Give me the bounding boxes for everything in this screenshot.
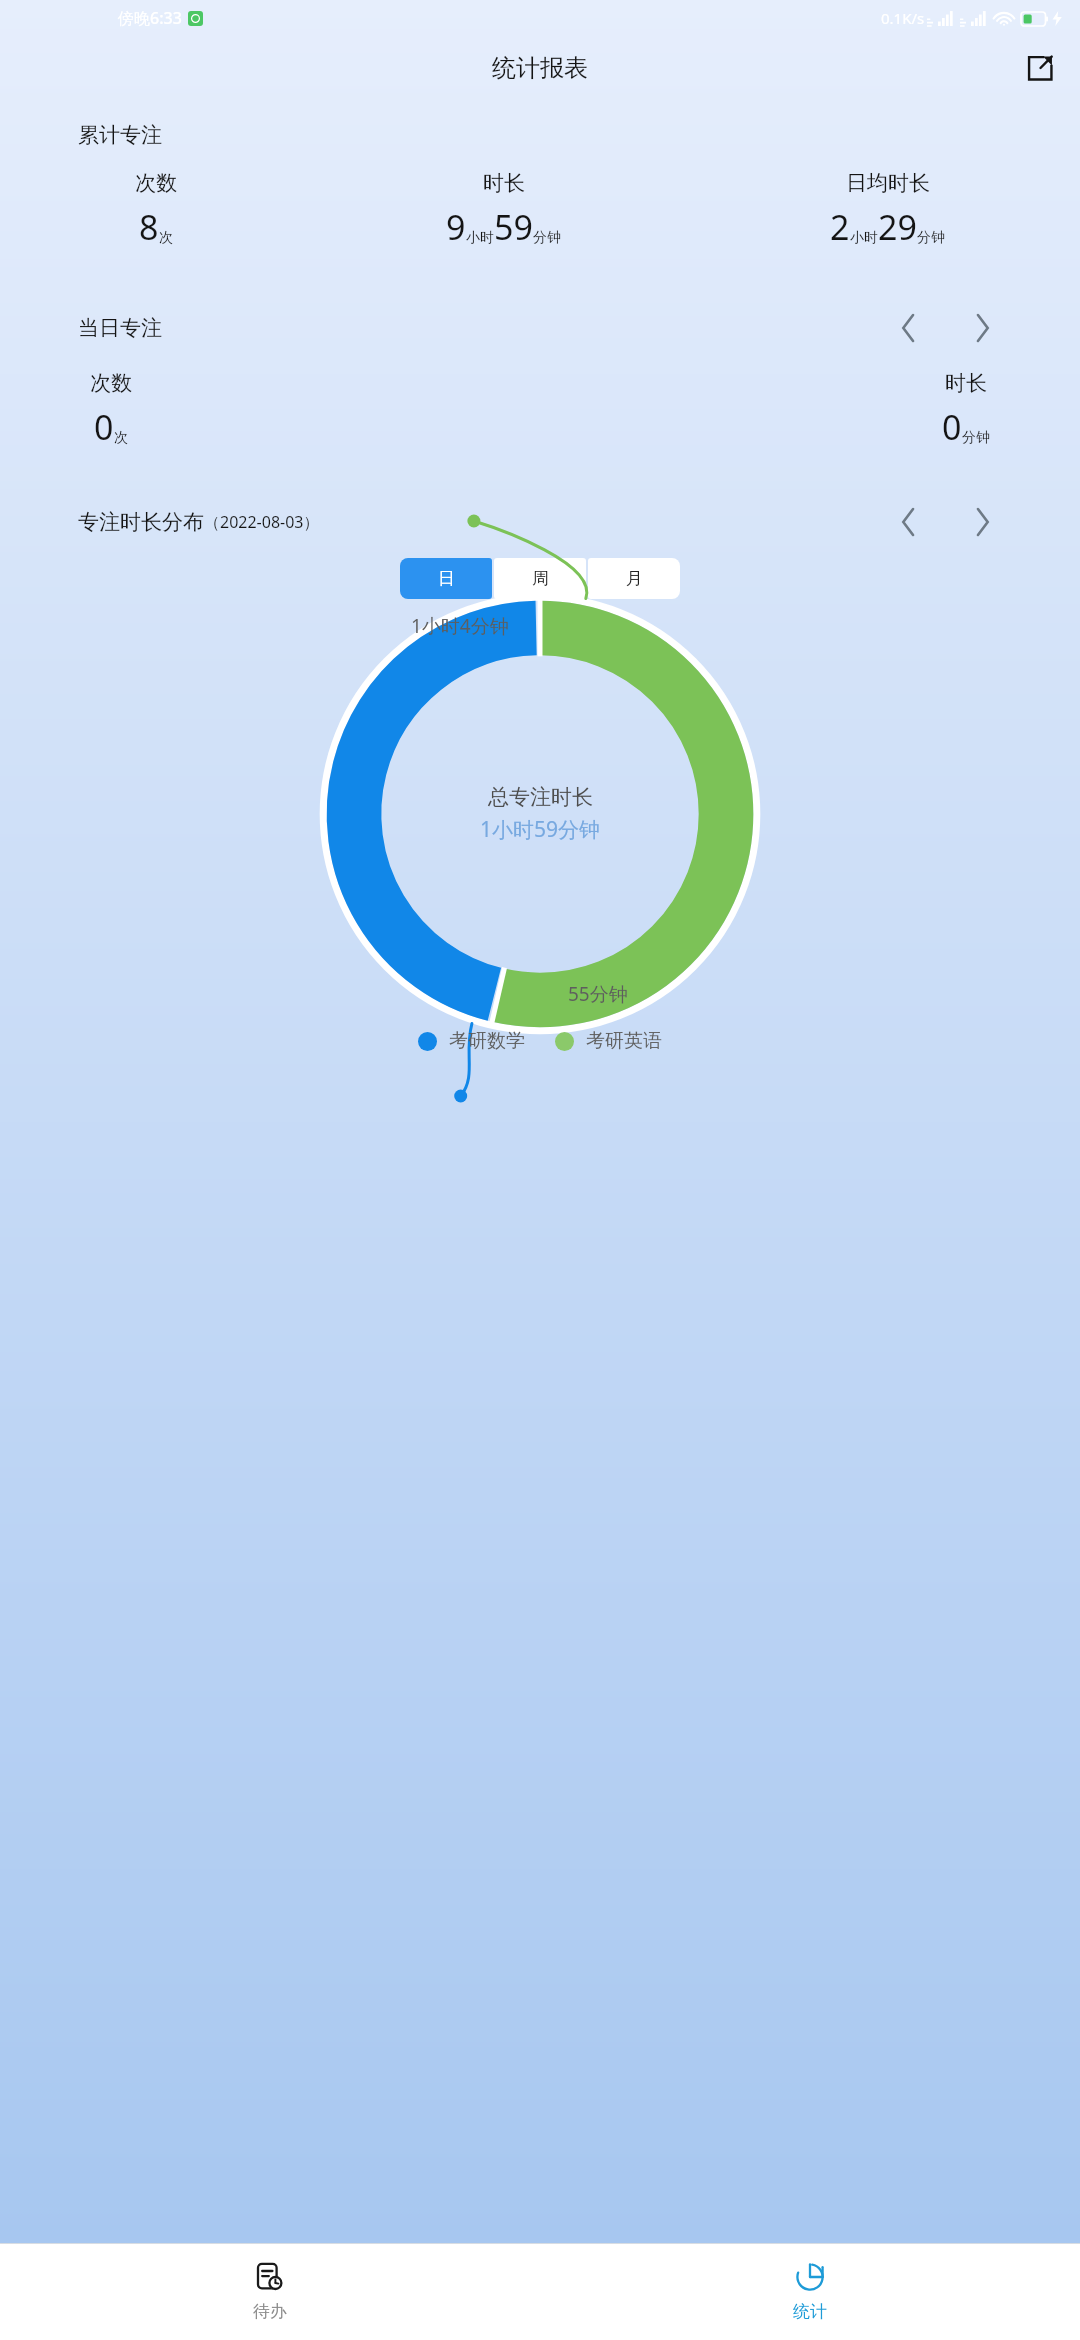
- staticText: 2: [830, 204, 850, 250]
- staticText: 29: [878, 204, 917, 250]
- staticText: （2022-08-03）: [204, 511, 320, 533]
- staticText: 日均时长: [846, 170, 930, 196]
- staticText: 累计专注: [78, 122, 162, 148]
- staticText: 分钟: [533, 229, 561, 247]
- staticText: 当日专注: [78, 315, 162, 341]
- button[interactable]: 日: [400, 558, 492, 599]
- button[interactable]: 待办: [0, 2244, 540, 2340]
- staticText: 小时: [466, 229, 494, 247]
- button[interactable]: 周: [494, 558, 586, 599]
- staticText: 时长: [945, 370, 987, 396]
- staticText: 次: [159, 229, 173, 247]
- staticText: 0: [94, 404, 114, 450]
- staticText: 傍晚6:33: [118, 7, 182, 29]
- staticText: 0.1K/s: [881, 8, 925, 28]
- staticText: 周: [532, 568, 549, 589]
- button[interactable]: 分享: [1016, 44, 1064, 92]
- button[interactable]: 月: [588, 558, 680, 599]
- staticText: 月: [626, 568, 643, 589]
- button[interactable]: 上一个: [888, 502, 928, 542]
- staticText: 统计报表: [492, 53, 588, 83]
- staticText: 次数: [90, 370, 132, 396]
- staticText: 1小时4分钟: [411, 613, 509, 639]
- staticText: 0: [942, 404, 962, 450]
- staticText: 分钟: [962, 429, 990, 447]
- staticText: 考研英语: [586, 1029, 662, 1053]
- staticText: 待办: [253, 2301, 287, 2322]
- staticText: 59: [494, 204, 533, 250]
- staticText: 次: [114, 429, 128, 447]
- staticText: 小时: [850, 229, 878, 247]
- button[interactable]: 下一个: [962, 502, 1002, 542]
- button[interactable]: 上一个: [888, 308, 928, 348]
- staticText: 日: [438, 568, 455, 589]
- staticText: 分钟: [917, 229, 945, 247]
- staticText: 时长: [483, 170, 525, 196]
- staticText: 专注时长分布: [78, 509, 204, 535]
- staticText: 总专注时长: [488, 784, 593, 810]
- staticText: 55分钟: [568, 981, 628, 1007]
- button[interactable]: 统计: [540, 2244, 1080, 2340]
- staticText: 次数: [135, 170, 177, 196]
- staticText: 1小时59分钟: [480, 815, 601, 844]
- staticText: 8: [139, 204, 159, 250]
- staticText: 统计: [793, 2301, 827, 2322]
- button[interactable]: 下一个: [962, 308, 1002, 348]
- staticText: 考研数学: [449, 1029, 525, 1053]
- staticText: 9: [446, 204, 466, 250]
